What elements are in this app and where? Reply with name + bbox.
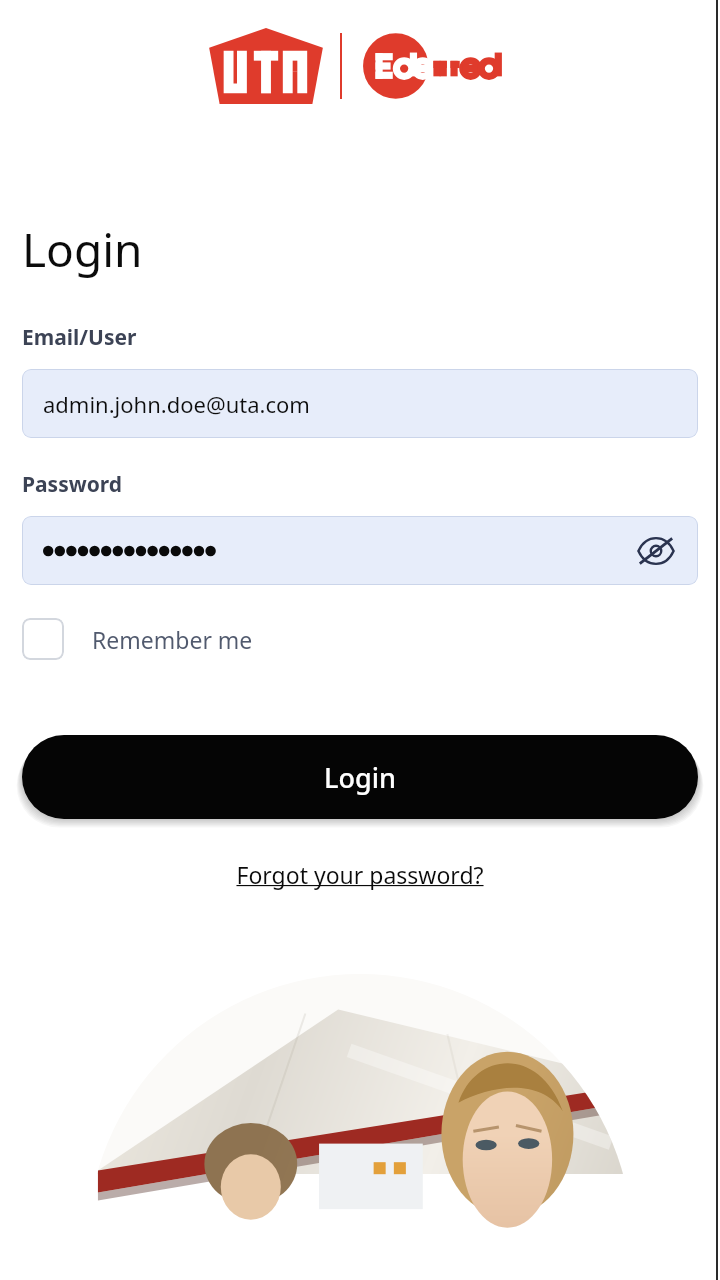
staticText: Password [22,470,123,499]
button[interactable]: Login [22,735,698,819]
staticText: Forgot your password? [236,859,484,890]
button[interactable]: Remember me [22,611,253,667]
staticText: Remember me [92,624,253,655]
staticText: Email/User [22,323,137,352]
button[interactable]: Show password [22,516,698,585]
staticText: Login [324,759,396,796]
button[interactable]: Show password [630,525,682,577]
button[interactable]: Forgot your password? [236,859,484,890]
staticText: admin.john.doe@uta.com [43,389,310,419]
button[interactable]: admin.john.doe@uta.com [22,369,698,438]
staticText: Login [22,218,143,281]
